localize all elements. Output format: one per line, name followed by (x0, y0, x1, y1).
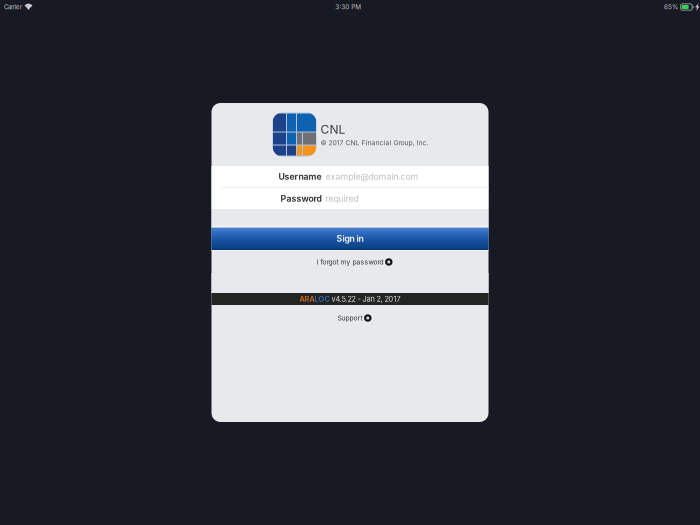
button[interactable]: Support (211, 305, 488, 331)
button[interactable]: Username (211, 166, 488, 187)
staticText: v4.5.22 - Jan 2, 2017 (331, 295, 400, 303)
staticText: Sign in (336, 233, 363, 244)
staticText: Username (278, 171, 321, 182)
staticText: Carrier (4, 3, 22, 11)
staticText: © 2017 CNL Financial Group, Inc. (320, 139, 428, 147)
staticText: I forgot my password (316, 258, 383, 266)
staticText: CNL (320, 122, 345, 137)
button[interactable]: Sign in (211, 228, 488, 251)
staticText: 65% (664, 3, 678, 11)
staticText: example@domain.com (325, 171, 418, 182)
staticText: 3:30 PM (335, 3, 361, 11)
button[interactable]: I forgot my password (211, 251, 488, 273)
staticText: Password (280, 193, 321, 204)
staticText: Support (337, 314, 362, 322)
staticText: required (325, 193, 358, 204)
button[interactable]: Password (211, 188, 488, 209)
staticText: ARA (299, 295, 314, 303)
staticText: LOC (314, 295, 329, 303)
